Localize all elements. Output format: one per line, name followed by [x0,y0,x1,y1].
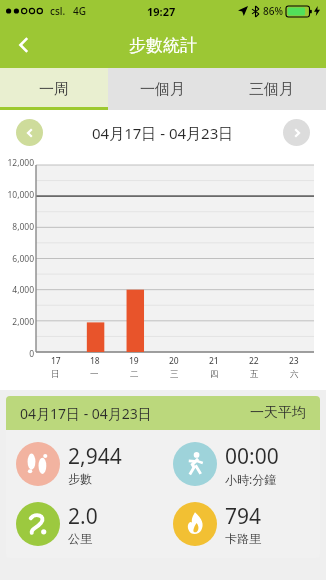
button[interactable]: 2,944 [16,436,163,492]
button[interactable]: 2.0 [16,496,163,552]
staticText: 2,000 [12,316,34,328]
staticText: 4G [73,4,86,18]
staticText: 4,000 [12,284,34,296]
button[interactable]: 794 [173,496,320,552]
staticText: 0 [29,348,34,360]
staticText: 小時:分鐘 [225,471,277,487]
staticText: 20 [169,355,179,367]
staticText: 2,944 [68,442,122,471]
staticText: 日 [51,369,60,380]
staticText: 04月17日 - 04月23日 [20,404,152,423]
button[interactable]: Next week [283,119,310,146]
staticText: 17 [51,355,61,367]
staticText: 一 [90,369,99,380]
button[interactable]: 00:00 [173,436,320,492]
staticText: 22 [249,355,259,367]
staticText: 21 [209,355,219,367]
staticText: 三個月 [249,80,294,99]
staticText: 04月17日 - 04月23日 [92,123,234,143]
staticText: 三 [170,369,179,380]
button[interactable]: Previous week [16,119,43,146]
staticText: 794 [225,502,262,531]
staticText: 一天平均 [250,404,306,422]
staticText: 19 [129,355,139,367]
staticText: 四 [210,369,219,380]
staticText: csl. [50,4,66,18]
staticText: 6,000 [12,253,34,265]
staticText: 公里 [68,531,92,546]
staticText: 一周 [39,80,69,99]
staticText: 二 [130,369,139,380]
staticText: 12,000 [7,157,34,169]
button[interactable]: 一周 [0,68,108,110]
staticText: 10,000 [7,189,34,201]
staticText: 卡路里 [225,531,261,546]
staticText: 一個月 [140,80,185,99]
staticText: 8,000 [12,221,34,233]
staticText: 00:00 [225,442,279,471]
staticText: 五 [250,369,259,380]
button[interactable]: 三個月 [217,68,326,110]
staticText: 86% [263,4,283,18]
button[interactable]: Back [4,25,44,65]
button[interactable]: 一個月 [108,68,217,110]
staticText: 步數統計 [129,35,197,56]
staticText: 六 [290,369,299,380]
staticText: 19:27 [147,4,176,19]
staticText: 2.0 [68,502,98,531]
staticText: 23 [289,355,299,367]
staticText: 18 [90,355,100,367]
staticText: 步數 [68,471,92,486]
